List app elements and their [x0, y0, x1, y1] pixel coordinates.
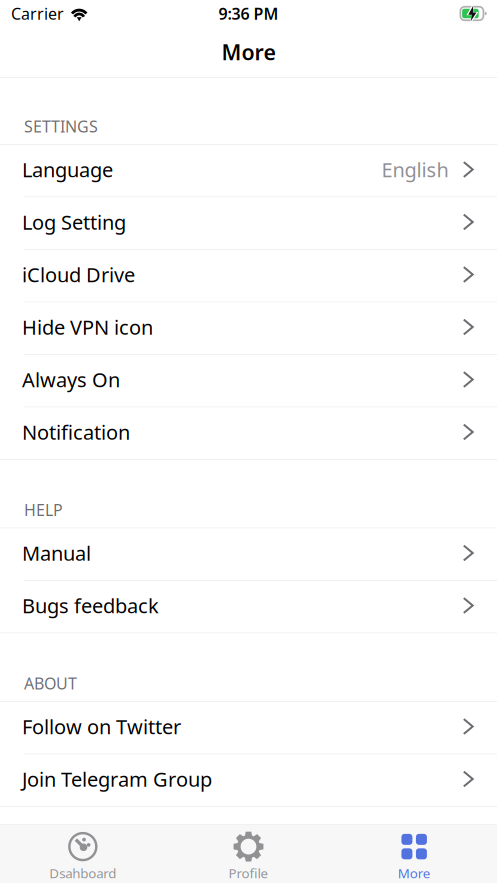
- button[interactable]: Hide VPN icon: [0, 302, 497, 355]
- staticText: ABOUT: [24, 673, 77, 694]
- staticText: Dsahboard: [49, 864, 116, 882]
- staticText: Follow on Twitter: [22, 713, 181, 740]
- staticText: Carrier: [11, 3, 64, 24]
- staticText: Bugs feedback: [22, 592, 159, 619]
- staticText: More: [221, 38, 275, 66]
- staticText: Hide VPN icon: [22, 314, 153, 340]
- staticText: HELP: [24, 499, 63, 520]
- button[interactable]: Join Telegram Group: [0, 754, 497, 807]
- button[interactable]: Follow on Twitter: [0, 702, 497, 754]
- staticText: Join Telegram Group: [22, 766, 212, 792]
- staticText: SETTINGS: [24, 116, 98, 137]
- staticText: Always On: [22, 366, 120, 393]
- button[interactable]: iCloud Drive: [0, 250, 497, 302]
- staticText: Profile: [228, 864, 268, 882]
- staticText: English: [381, 156, 448, 183]
- staticText: iCloud Drive: [22, 261, 135, 288]
- button[interactable]: Profile: [166, 825, 331, 883]
- button[interactable]: Dsahboard: [0, 825, 166, 883]
- staticText: 9:36 PM: [218, 3, 278, 24]
- button[interactable]: Bugs feedback: [0, 581, 497, 633]
- button[interactable]: More: [331, 825, 497, 883]
- button[interactable]: Always On: [0, 355, 497, 407]
- button[interactable]: Manual: [0, 528, 497, 581]
- staticText: Language: [22, 156, 113, 183]
- button[interactable]: Notification: [0, 407, 497, 460]
- staticText: Notification: [22, 419, 130, 445]
- button[interactable]: Log Setting: [0, 197, 497, 250]
- button[interactable]: Language: [0, 145, 497, 197]
- staticText: More: [398, 864, 431, 882]
- staticText: Log Setting: [22, 209, 126, 235]
- staticText: Manual: [22, 540, 91, 566]
